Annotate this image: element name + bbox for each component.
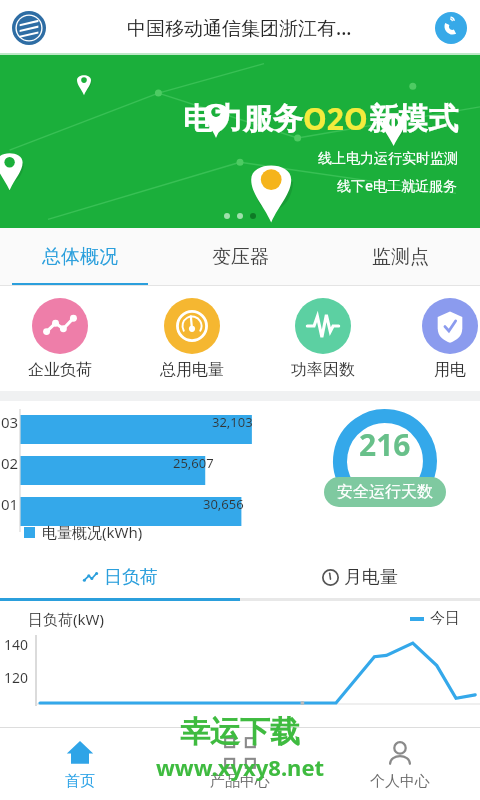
button[interactable]: 月电量 [240,556,480,598]
staticText: 电量概况(kWh) [42,522,143,542]
staticText: 03 [1,412,19,432]
staticText: 新模式 [368,100,458,138]
staticText: 216 [359,424,411,465]
staticText: 变压器 [212,245,269,269]
button[interactable]: 首页 [0,728,160,800]
staticText: 个人中心 [370,772,430,791]
button[interactable]: 企业负荷 [26,298,94,380]
staticText: 线下e电工就近服务 [337,176,458,195]
button[interactable]: China Mobile logo [10,9,48,47]
staticText: 企业负荷 [28,360,92,380]
staticText: 电力服务 [183,100,303,138]
button[interactable]: 产品中心 [160,728,320,800]
staticText: 线上电力运行实时监测 [318,150,458,168]
staticText: 日负荷(kW) [28,609,104,629]
staticText: 120 [4,668,29,687]
button[interactable]: 监测点 [320,228,480,286]
staticText: 首页 [65,772,95,791]
staticText: 监测点 [372,245,429,269]
button[interactable]: 变压器 [160,228,320,286]
staticText: 25,607 [173,454,214,472]
staticText: 安全运行天数 [337,482,433,502]
staticText: 总体概况 [42,245,118,269]
staticText: 月电量 [344,566,398,589]
button[interactable]: 总体概况 [0,228,160,286]
staticText: 总用电量 [160,360,224,380]
staticText: 30,656 [203,495,244,513]
staticText: 今日 [430,609,460,628]
staticText: 日负荷 [104,566,158,589]
staticText: 02 [1,453,19,473]
staticText: www.xyxy8.net [156,752,325,782]
staticText: 用电 [434,360,466,380]
button[interactable]: Call [432,9,470,47]
staticText: 功率因数 [291,360,355,380]
button[interactable]: 功率因数 [289,298,357,380]
staticText: 幸运下载 [180,713,300,751]
button[interactable]: 个人中心 [320,728,480,800]
staticText: O2O [303,98,368,139]
staticText: 140 [4,635,29,654]
button[interactable]: 用电 [420,298,480,380]
staticText: 中国移动通信集团浙江有... [127,15,352,41]
staticText: 01 [1,494,19,514]
button[interactable]: 总用电量 [158,298,226,380]
staticText: 产品中心 [210,772,270,791]
staticText: 32,103 [212,413,253,431]
button[interactable]: 日负荷 [0,556,240,598]
